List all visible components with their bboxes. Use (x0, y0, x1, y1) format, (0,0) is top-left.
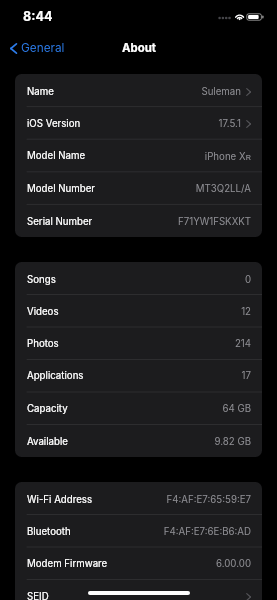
staticText: Photos (27, 338, 59, 350)
button[interactable]: Modem Firmware (15, 546, 262, 579)
button[interactable]: Wi-Fi Address (15, 482, 262, 514)
button[interactable]: Serial Number (15, 204, 262, 237)
button[interactable]: Capacity (15, 391, 262, 424)
staticText: Available (27, 436, 68, 448)
button[interactable]: Model Name (15, 138, 262, 171)
staticText: Name (27, 86, 54, 98)
button[interactable]: Back to General (0, 40, 73, 55)
staticText: Modem Firmware (27, 558, 108, 570)
staticText: F4:AF:E7:6E:B6:AD (163, 526, 251, 538)
button[interactable]: Name (15, 74, 262, 106)
staticText: 8:44 (23, 9, 53, 24)
staticText: Wi-Fi Address (27, 494, 93, 506)
button[interactable]: Videos (15, 294, 262, 326)
staticText: Videos (27, 306, 59, 318)
staticText: Bluetooth (27, 526, 71, 538)
staticText: Suleman (201, 86, 241, 98)
button[interactable]: Bluetooth (15, 514, 262, 546)
staticText: Model Name (27, 150, 86, 162)
staticText: Model Number (27, 183, 95, 195)
button[interactable]: SEID (15, 579, 262, 600)
staticText: Capacity (27, 403, 68, 415)
staticText: iPhone Xʀ (204, 150, 251, 163)
button[interactable]: Available (15, 424, 262, 457)
staticText: 17 (241, 370, 251, 382)
button[interactable]: iOS Version (15, 106, 262, 138)
button[interactable]: Songs (15, 262, 262, 294)
staticText: Songs (27, 274, 56, 286)
other: Back to General (10, 43, 17, 54)
staticText: iOS Version (27, 118, 81, 130)
staticText: 214 (234, 338, 251, 350)
staticText: 9.82 GB (214, 436, 251, 448)
staticText: General (21, 41, 65, 55)
staticText: 0 (244, 274, 251, 286)
staticText: F4:AF:E7:65:59:E7 (166, 494, 251, 506)
staticText: F71YW1FSKXKT (177, 216, 251, 228)
button[interactable]: Model Number (15, 171, 262, 204)
staticText: 12 (241, 306, 251, 318)
staticText: 64 GB (222, 403, 251, 415)
staticText: SEID (27, 591, 49, 600)
staticText: About (122, 41, 156, 55)
staticText: 17.5.1 (218, 118, 241, 130)
staticText: MT3Q2LL/A (195, 183, 251, 195)
button[interactable]: Photos (15, 326, 262, 358)
button[interactable]: Applications (15, 358, 262, 391)
staticText: Serial Number (27, 216, 93, 228)
staticText: 6.00.00 (216, 558, 251, 570)
staticText: Applications (27, 370, 84, 382)
